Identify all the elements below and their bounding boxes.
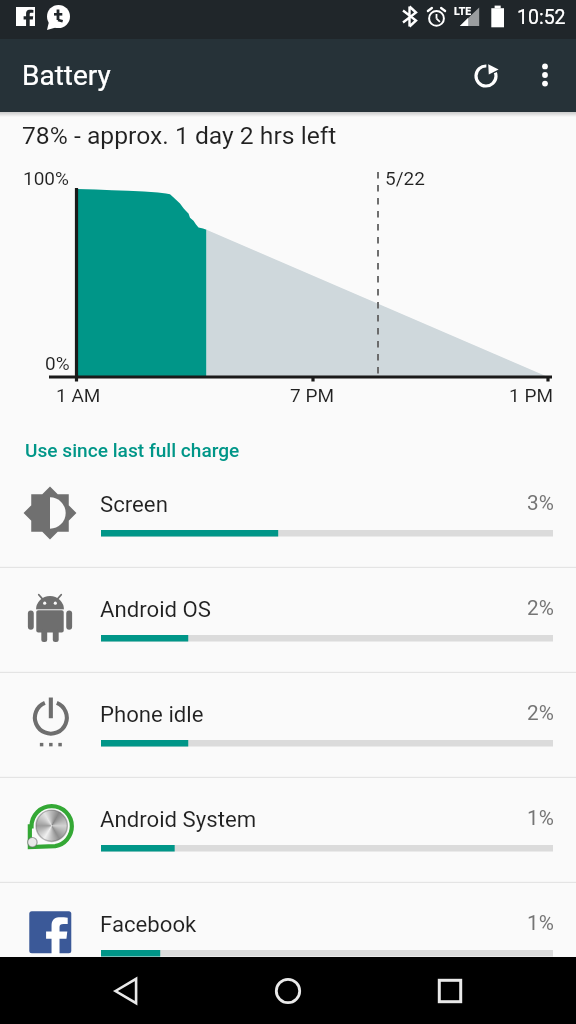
- staticText: 1%: [527, 806, 554, 830]
- button[interactable]: Android OS: [0, 568, 576, 673]
- staticText: 2%: [527, 596, 554, 620]
- button[interactable]: Back: [92, 957, 159, 1024]
- staticText: 0%: [45, 352, 70, 374]
- staticText: 7 PM: [290, 384, 334, 406]
- staticText: 1%: [527, 911, 554, 935]
- staticText: Screen: [100, 491, 168, 517]
- button[interactable]: Facebook: [0, 883, 576, 988]
- staticText: Use since last full charge: [25, 439, 240, 461]
- staticText: 1 PM: [509, 384, 553, 406]
- staticText: 2%: [527, 701, 554, 725]
- button[interactable]: Screen: [0, 463, 576, 568]
- staticText: Android System: [100, 806, 257, 832]
- staticText: 1 AM: [56, 384, 101, 406]
- staticText: 10:52: [517, 6, 566, 29]
- button[interactable]: Phone idle: [0, 673, 576, 778]
- button[interactable]: Recents: [416, 957, 483, 1024]
- staticText: 5/22: [385, 167, 425, 189]
- staticText: Phone idle: [100, 701, 204, 727]
- staticText: 3%: [527, 491, 554, 515]
- staticText: Facebook: [100, 911, 197, 937]
- staticText: 78% - approx. 1 day 2 hrs left: [22, 121, 337, 150]
- staticText: Android OS: [100, 596, 212, 622]
- staticText: Battery: [22, 59, 111, 92]
- button[interactable]: Android System: [0, 778, 576, 883]
- button[interactable]: More options: [515, 45, 575, 105]
- staticText: 100%: [23, 167, 69, 189]
- button[interactable]: Refresh: [450, 39, 522, 111]
- staticText: LTE: [454, 5, 472, 17]
- button[interactable]: Home: [254, 957, 321, 1024]
